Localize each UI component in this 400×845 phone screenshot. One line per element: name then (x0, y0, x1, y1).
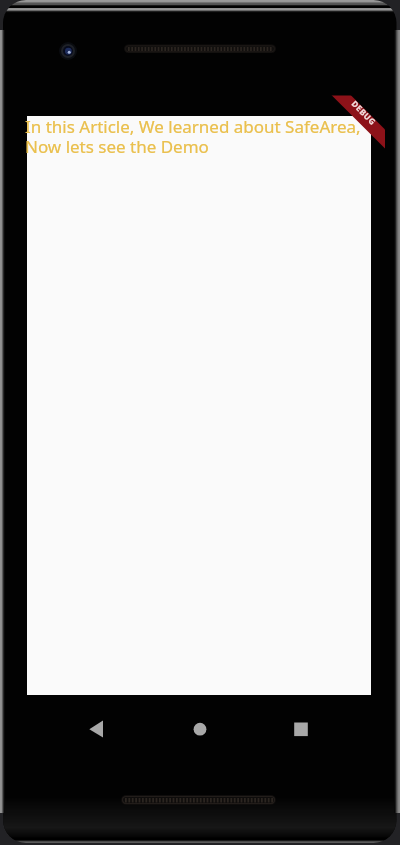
button[interactable]: Home (176, 705, 224, 753)
button[interactable]: Back (72, 705, 120, 753)
staticText: DEBUG (349, 98, 378, 127)
button[interactable]: Recent apps (277, 705, 325, 753)
staticText: In this Article, We learned about SafeAr… (25, 115, 369, 158)
